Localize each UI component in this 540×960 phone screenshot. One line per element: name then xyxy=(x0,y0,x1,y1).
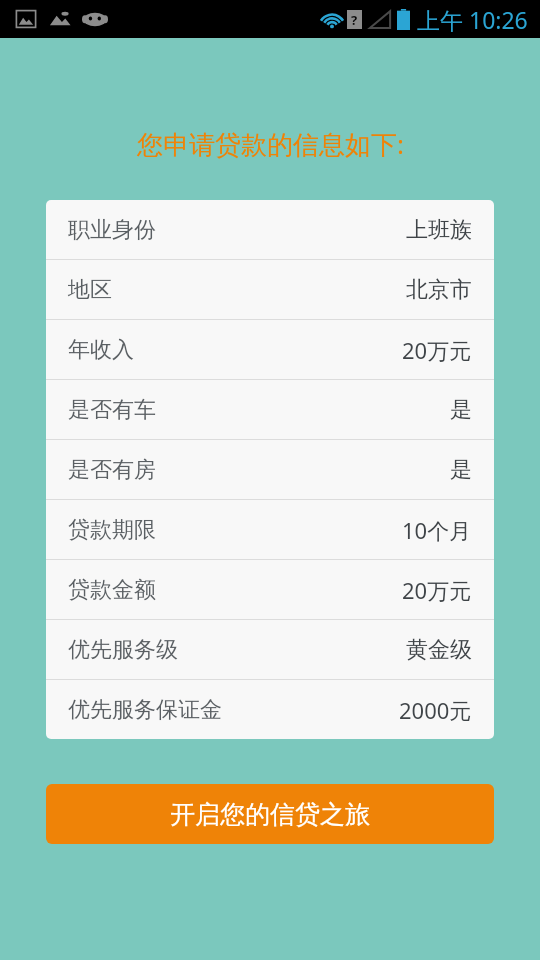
staticText: 您申请贷款的信息如下: xyxy=(137,126,404,162)
staticText: 10个月 xyxy=(402,515,472,545)
button[interactable]: 贷款期限 xyxy=(46,500,494,559)
staticText: 优先服务保证金 xyxy=(68,696,222,724)
button[interactable]: 优先服务级 xyxy=(46,620,494,679)
staticText: 2000元 xyxy=(399,695,472,725)
staticText: 贷款期限 xyxy=(68,516,156,544)
staticText: 地区 xyxy=(68,276,112,304)
button[interactable]: 是否有车 xyxy=(46,380,494,439)
staticText: 北京市 xyxy=(406,276,472,304)
button[interactable]: 贷款金额 xyxy=(46,560,494,619)
staticText: 是 xyxy=(450,396,472,424)
button[interactable]: 是否有房 xyxy=(46,440,494,499)
staticText: 是否有车 xyxy=(68,396,156,424)
button[interactable]: 职业身份 xyxy=(46,200,494,259)
staticText: 黄金级 xyxy=(406,636,472,664)
button[interactable]: 开启您的信贷之旅 xyxy=(46,784,494,844)
staticText: 上班族 xyxy=(406,216,472,244)
staticText: 20万元 xyxy=(402,335,472,365)
staticText: 上午 10:26 xyxy=(417,4,528,35)
staticText: 职业身份 xyxy=(68,216,156,244)
button[interactable]: 年收入 xyxy=(46,320,494,379)
staticText: 是否有房 xyxy=(68,456,156,484)
staticText: 开启您的信贷之旅 xyxy=(170,799,370,830)
staticText: 贷款金额 xyxy=(68,576,156,604)
staticText: 是 xyxy=(450,456,472,484)
staticText: 年收入 xyxy=(68,336,134,364)
staticText: 20万元 xyxy=(402,575,472,605)
button[interactable]: 地区 xyxy=(46,260,494,319)
staticText: 优先服务级 xyxy=(68,636,178,664)
staticText: ? xyxy=(351,11,358,29)
button[interactable]: 优先服务保证金 xyxy=(46,680,494,739)
